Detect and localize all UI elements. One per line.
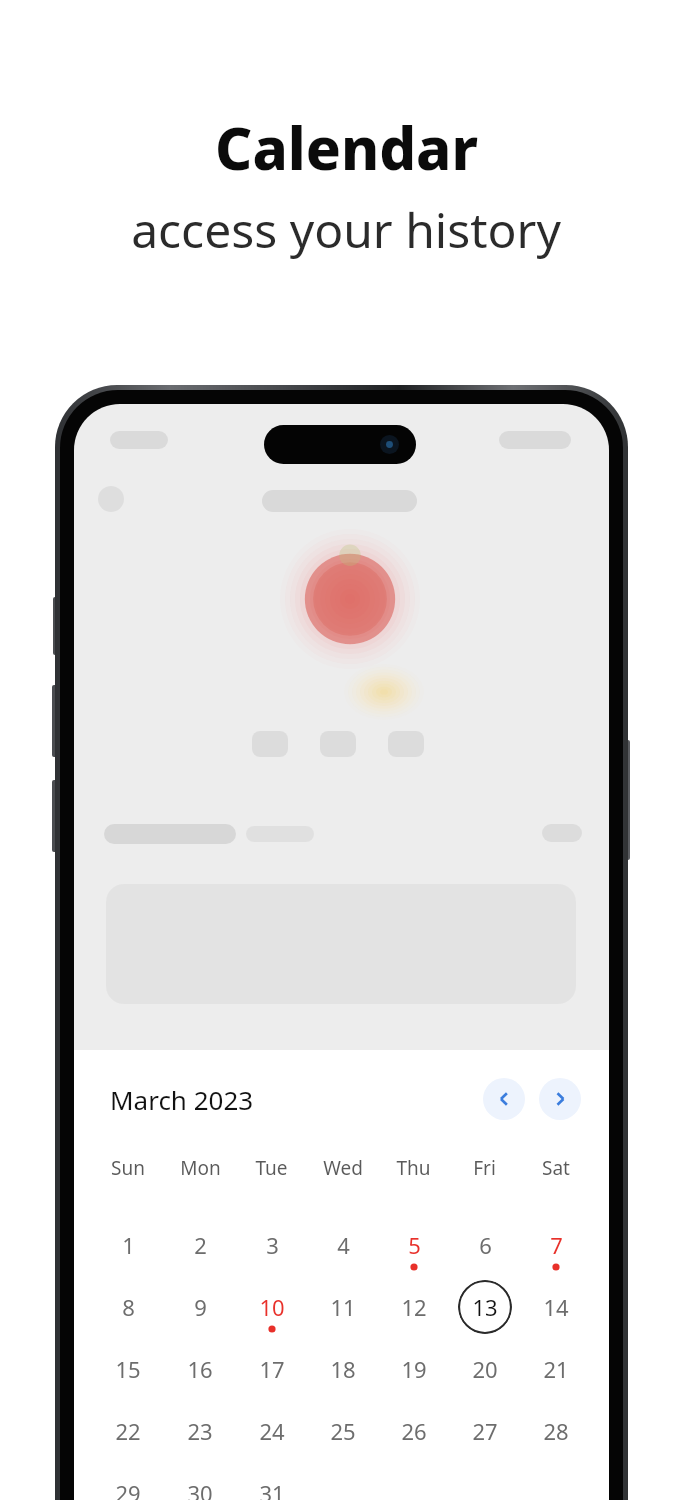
button[interactable]: 1: [101, 1218, 155, 1272]
staticText: Fri: [473, 1155, 496, 1181]
button[interactable]: 11: [316, 1280, 370, 1334]
button[interactable]: 10: [245, 1280, 299, 1334]
button[interactable]: 15: [101, 1342, 155, 1396]
button[interactable]: 29: [101, 1466, 155, 1500]
staticText: 7: [550, 1230, 563, 1260]
button[interactable]: 17: [245, 1342, 299, 1396]
button[interactable]: 13: [458, 1280, 512, 1334]
staticText: 30: [187, 1478, 213, 1500]
staticText: Mon: [180, 1155, 221, 1181]
staticText: 12: [401, 1292, 427, 1322]
staticText: 27: [472, 1416, 498, 1446]
button[interactable]: 19: [387, 1342, 441, 1396]
staticText: Sun: [111, 1155, 145, 1181]
button[interactable]: 30: [173, 1466, 227, 1500]
staticText: access your history: [131, 197, 561, 262]
staticText: 19: [401, 1354, 427, 1384]
button[interactable]: 8: [101, 1280, 155, 1334]
staticText: 10: [259, 1292, 285, 1322]
button[interactable]: 18: [316, 1342, 370, 1396]
staticText: 29: [115, 1478, 141, 1500]
staticText: 14: [543, 1292, 569, 1322]
staticText: 17: [259, 1354, 285, 1384]
staticText: 18: [330, 1354, 356, 1384]
button[interactable]: 5: [387, 1218, 441, 1272]
staticText: 16: [187, 1354, 213, 1384]
button[interactable]: 22: [101, 1404, 155, 1458]
button[interactable]: Next month: [539, 1078, 581, 1120]
button[interactable]: 31: [245, 1466, 299, 1500]
button[interactable]: 12: [387, 1280, 441, 1334]
staticText: Sat: [542, 1155, 570, 1181]
button[interactable]: 3: [245, 1218, 299, 1272]
staticText: 22: [115, 1416, 141, 1446]
button[interactable]: 24: [245, 1404, 299, 1458]
staticText: 1: [122, 1230, 135, 1260]
button[interactable]: 25: [316, 1404, 370, 1458]
button[interactable]: 14: [529, 1280, 583, 1334]
staticText: 20: [472, 1354, 498, 1384]
staticText: Wed: [323, 1155, 363, 1181]
staticText: 9: [194, 1292, 207, 1322]
staticText: Calendar: [215, 108, 478, 187]
staticText: 28: [543, 1416, 569, 1446]
staticText: 21: [543, 1354, 569, 1384]
staticText: 3: [266, 1230, 279, 1260]
staticText: Thu: [396, 1155, 431, 1181]
button[interactable]: 20: [458, 1342, 512, 1396]
staticText: March 2023: [110, 1082, 254, 1117]
staticText: 31: [259, 1478, 285, 1500]
staticText: 11: [330, 1292, 356, 1322]
button[interactable]: 6: [458, 1218, 512, 1272]
button[interactable]: 2: [173, 1218, 227, 1272]
staticText: 8: [122, 1292, 135, 1322]
staticText: 25: [330, 1416, 356, 1446]
button[interactable]: 4: [316, 1218, 370, 1272]
staticText: 4: [337, 1230, 350, 1260]
button[interactable]: 7: [529, 1218, 583, 1272]
button[interactable]: 21: [529, 1342, 583, 1396]
button[interactable]: 16: [173, 1342, 227, 1396]
staticText: 6: [479, 1230, 492, 1260]
staticText: 23: [187, 1416, 213, 1446]
button[interactable]: 27: [458, 1404, 512, 1458]
button[interactable]: 23: [173, 1404, 227, 1458]
staticText: 5: [408, 1230, 421, 1260]
staticText: 26: [401, 1416, 427, 1446]
staticText: 15: [115, 1354, 141, 1384]
button[interactable]: Previous month: [483, 1078, 525, 1120]
staticText: Tue: [255, 1155, 288, 1181]
button[interactable]: 9: [173, 1280, 227, 1334]
staticText: 2: [194, 1230, 207, 1260]
button[interactable]: 26: [387, 1404, 441, 1458]
button[interactable]: 28: [529, 1404, 583, 1458]
staticText: 24: [259, 1416, 285, 1446]
staticText: 13: [472, 1292, 498, 1322]
